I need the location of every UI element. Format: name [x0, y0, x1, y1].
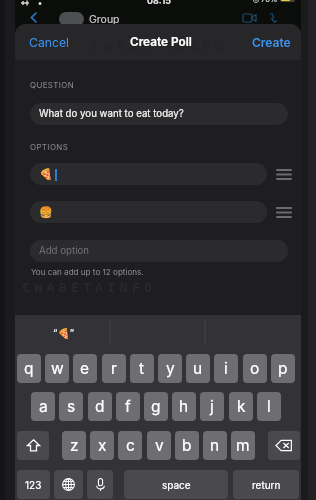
staticText: space	[162, 479, 191, 491]
button[interactable]: k	[229, 392, 253, 421]
staticText: QUESTION	[30, 80, 75, 90]
button[interactable]: l	[257, 392, 281, 421]
button[interactable]: Shift	[17, 431, 49, 460]
staticText: 🍔	[39, 206, 53, 219]
button[interactable]: space	[124, 470, 228, 499]
button[interactable]: What do you want to eat today?	[30, 103, 288, 125]
button[interactable]: s	[59, 392, 83, 421]
staticText: t	[139, 359, 145, 378]
staticText: Create	[252, 35, 291, 50]
staticText: u	[193, 359, 203, 378]
button[interactable]: return	[233, 470, 299, 499]
button[interactable]: b	[175, 431, 199, 460]
staticText: k	[237, 397, 246, 416]
staticText: x	[98, 436, 107, 455]
button[interactable]: Reorder option	[269, 163, 297, 185]
button[interactable]: i	[214, 354, 238, 383]
staticText: z	[70, 436, 79, 455]
staticText: a	[39, 397, 48, 416]
staticText: CWABETAINFO	[92, 39, 227, 54]
button[interactable]: 123	[17, 470, 50, 499]
staticText: o	[250, 359, 260, 378]
staticText: y	[166, 359, 175, 378]
staticText: p	[278, 359, 288, 378]
staticText: g	[151, 397, 161, 416]
staticText: r	[111, 359, 117, 378]
other: Back	[31, 13, 36, 22]
staticText: “🍕”	[53, 327, 75, 339]
staticText: You can add up to 12 options.	[31, 267, 144, 277]
staticText: 123	[25, 479, 42, 491]
staticText: Add option	[39, 245, 90, 257]
staticText: OPTIONS	[30, 142, 69, 152]
button[interactable]: Change keyboard language	[54, 470, 83, 499]
button[interactable]: c	[118, 431, 142, 460]
staticText: b	[182, 436, 192, 455]
button[interactable]: z	[62, 431, 86, 460]
button[interactable]: Voice input	[87, 470, 113, 499]
staticText: return	[252, 479, 281, 491]
button[interactable]: h	[172, 392, 196, 421]
staticText: d	[95, 397, 105, 416]
staticText: Cancel	[29, 35, 69, 50]
staticText: c	[126, 436, 135, 455]
button[interactable]: Cancel	[15, 27, 83, 58]
button[interactable]: r	[102, 354, 126, 383]
button[interactable]: g	[144, 392, 168, 421]
staticText: 🍕	[39, 168, 53, 181]
button[interactable]: e	[73, 354, 97, 383]
staticText: j	[210, 397, 214, 416]
button[interactable]: w	[45, 354, 69, 383]
button[interactable]: Add option	[30, 240, 288, 262]
button[interactable]: a	[31, 392, 55, 421]
staticText: Group	[89, 13, 120, 26]
button[interactable]: j	[200, 392, 224, 421]
button[interactable]: t	[130, 354, 154, 383]
button[interactable]: p	[271, 354, 295, 383]
button[interactable]: o	[243, 354, 267, 383]
staticText: q	[24, 359, 34, 378]
staticText: h	[179, 397, 189, 416]
staticText: l	[267, 397, 271, 416]
staticText: What do you want to eat today?	[39, 108, 184, 120]
staticText: v	[155, 436, 164, 455]
staticText: e	[80, 359, 90, 378]
staticText: Create Poll	[130, 35, 192, 49]
staticText: w	[51, 359, 64, 378]
staticText: n	[210, 436, 220, 455]
staticText: i	[224, 359, 228, 378]
button[interactable]: y	[158, 354, 182, 383]
button[interactable]: x	[90, 431, 114, 460]
staticText: s	[67, 397, 76, 416]
button[interactable]: Backspace	[268, 431, 300, 460]
button[interactable]: 🍕	[30, 163, 267, 185]
button[interactable]: u	[186, 354, 210, 383]
button[interactable]: d	[88, 392, 112, 421]
button[interactable]: f	[116, 392, 140, 421]
button[interactable]: Reorder option	[269, 201, 297, 223]
button[interactable]: q	[17, 354, 41, 383]
staticText: m	[236, 436, 250, 455]
button[interactable]: n	[203, 431, 227, 460]
button[interactable]: Create	[238, 27, 301, 58]
staticText: 08:15	[147, 0, 172, 6]
button[interactable]: v	[147, 431, 171, 460]
staticText: 70%	[261, 0, 278, 4]
button[interactable]: 🍔	[30, 201, 267, 223]
button[interactable]: m	[231, 431, 255, 460]
staticText: f	[125, 397, 131, 416]
staticText: CWABETAINFO	[22, 280, 157, 295]
